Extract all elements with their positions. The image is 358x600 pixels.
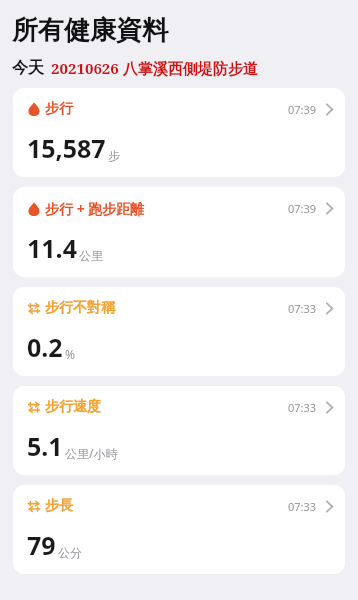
staticText: 所有健康資料: [12, 14, 168, 47]
staticText: 公里/小時: [65, 445, 118, 461]
staticText: 步: [108, 148, 120, 163]
staticText: 07:33: [288, 499, 317, 514]
staticText: 79: [27, 528, 56, 562]
staticText: 11.4: [27, 231, 77, 265]
other: Activity: [27, 102, 41, 116]
button[interactable]: Activity: [13, 88, 345, 177]
other: Walking metric: [27, 301, 41, 315]
staticText: 步長: [45, 497, 73, 515]
button[interactable]: Walking metric: [13, 485, 345, 574]
staticText: 20210626 八掌溪西側堤防步道: [51, 58, 258, 78]
other: Walking metric: [27, 499, 41, 513]
staticText: 0.2: [27, 330, 63, 364]
button[interactable]: Walking metric: [13, 386, 345, 475]
staticText: 步行: [45, 100, 73, 118]
staticText: 公分: [58, 545, 82, 560]
button[interactable]: Activity: [13, 187, 345, 277]
staticText: 步行速度: [45, 398, 101, 416]
staticText: 07:33: [288, 301, 317, 316]
staticText: %: [65, 346, 75, 362]
staticText: 步行 + 跑步距離: [45, 199, 145, 218]
staticText: 5.1: [27, 429, 63, 463]
other: Activity: [27, 202, 41, 216]
staticText: 07:39: [288, 102, 317, 117]
staticText: 07:33: [288, 400, 317, 415]
staticText: 07:39: [288, 201, 317, 216]
staticText: 今天: [12, 58, 44, 78]
staticText: 15,587: [27, 131, 106, 165]
other: Walking metric: [27, 400, 41, 414]
staticText: 公里: [79, 248, 103, 263]
button[interactable]: Walking metric: [13, 287, 345, 376]
staticText: 步行不對稱: [45, 299, 115, 317]
